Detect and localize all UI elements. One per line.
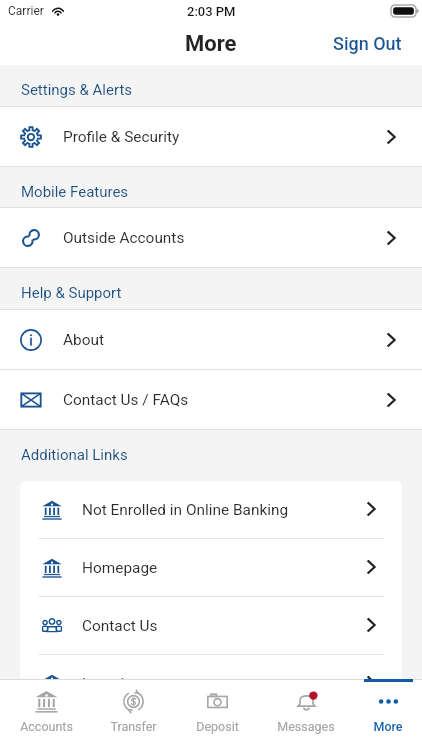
staticText: More [185, 31, 237, 57]
staticText: Outside Accounts [63, 229, 185, 247]
staticText: Transfer [110, 719, 157, 734]
staticText: Mobile Features [21, 183, 129, 201]
button[interactable]: Transfer [91, 679, 175, 749]
staticText: Carrier [8, 4, 44, 18]
staticText: Not Enrolled in Online Banking [82, 501, 289, 519]
staticText: Additional Links [21, 446, 128, 464]
button[interactable]: About [0, 310, 422, 370]
staticText: Settings & Alerts [21, 81, 133, 99]
button[interactable]: Not Enrolled in Online Banking [20, 481, 402, 539]
button[interactable]: Profile & Security [0, 107, 422, 167]
staticText: Sign Out [333, 33, 402, 54]
staticText: Profile & Security [63, 128, 180, 146]
button[interactable]: Contact Us / FAQs [0, 370, 422, 430]
staticText: About [63, 331, 104, 349]
staticText: Deposit [196, 719, 239, 734]
button[interactable]: Deposit [175, 679, 259, 749]
staticText: Help & Support [21, 284, 122, 302]
button[interactable]: Messages [264, 679, 348, 749]
staticText: Messages [277, 719, 335, 734]
staticText: Homepage [82, 559, 158, 577]
staticText: Locations [82, 675, 150, 679]
staticText: Contact Us [82, 617, 158, 635]
button[interactable]: Outside Accounts [0, 208, 422, 268]
button[interactable]: Sign Out [313, 25, 422, 62]
button[interactable]: Accounts [4, 679, 88, 749]
button[interactable]: Locations [20, 655, 402, 679]
staticText: Contact Us / FAQs [63, 391, 189, 409]
button[interactable]: More [346, 679, 422, 749]
staticText: 2:03 PM [187, 4, 236, 19]
button[interactable]: Contact Us [20, 597, 402, 655]
staticText: More [373, 719, 403, 734]
button[interactable]: Homepage [20, 539, 402, 597]
staticText: Accounts [20, 719, 73, 734]
